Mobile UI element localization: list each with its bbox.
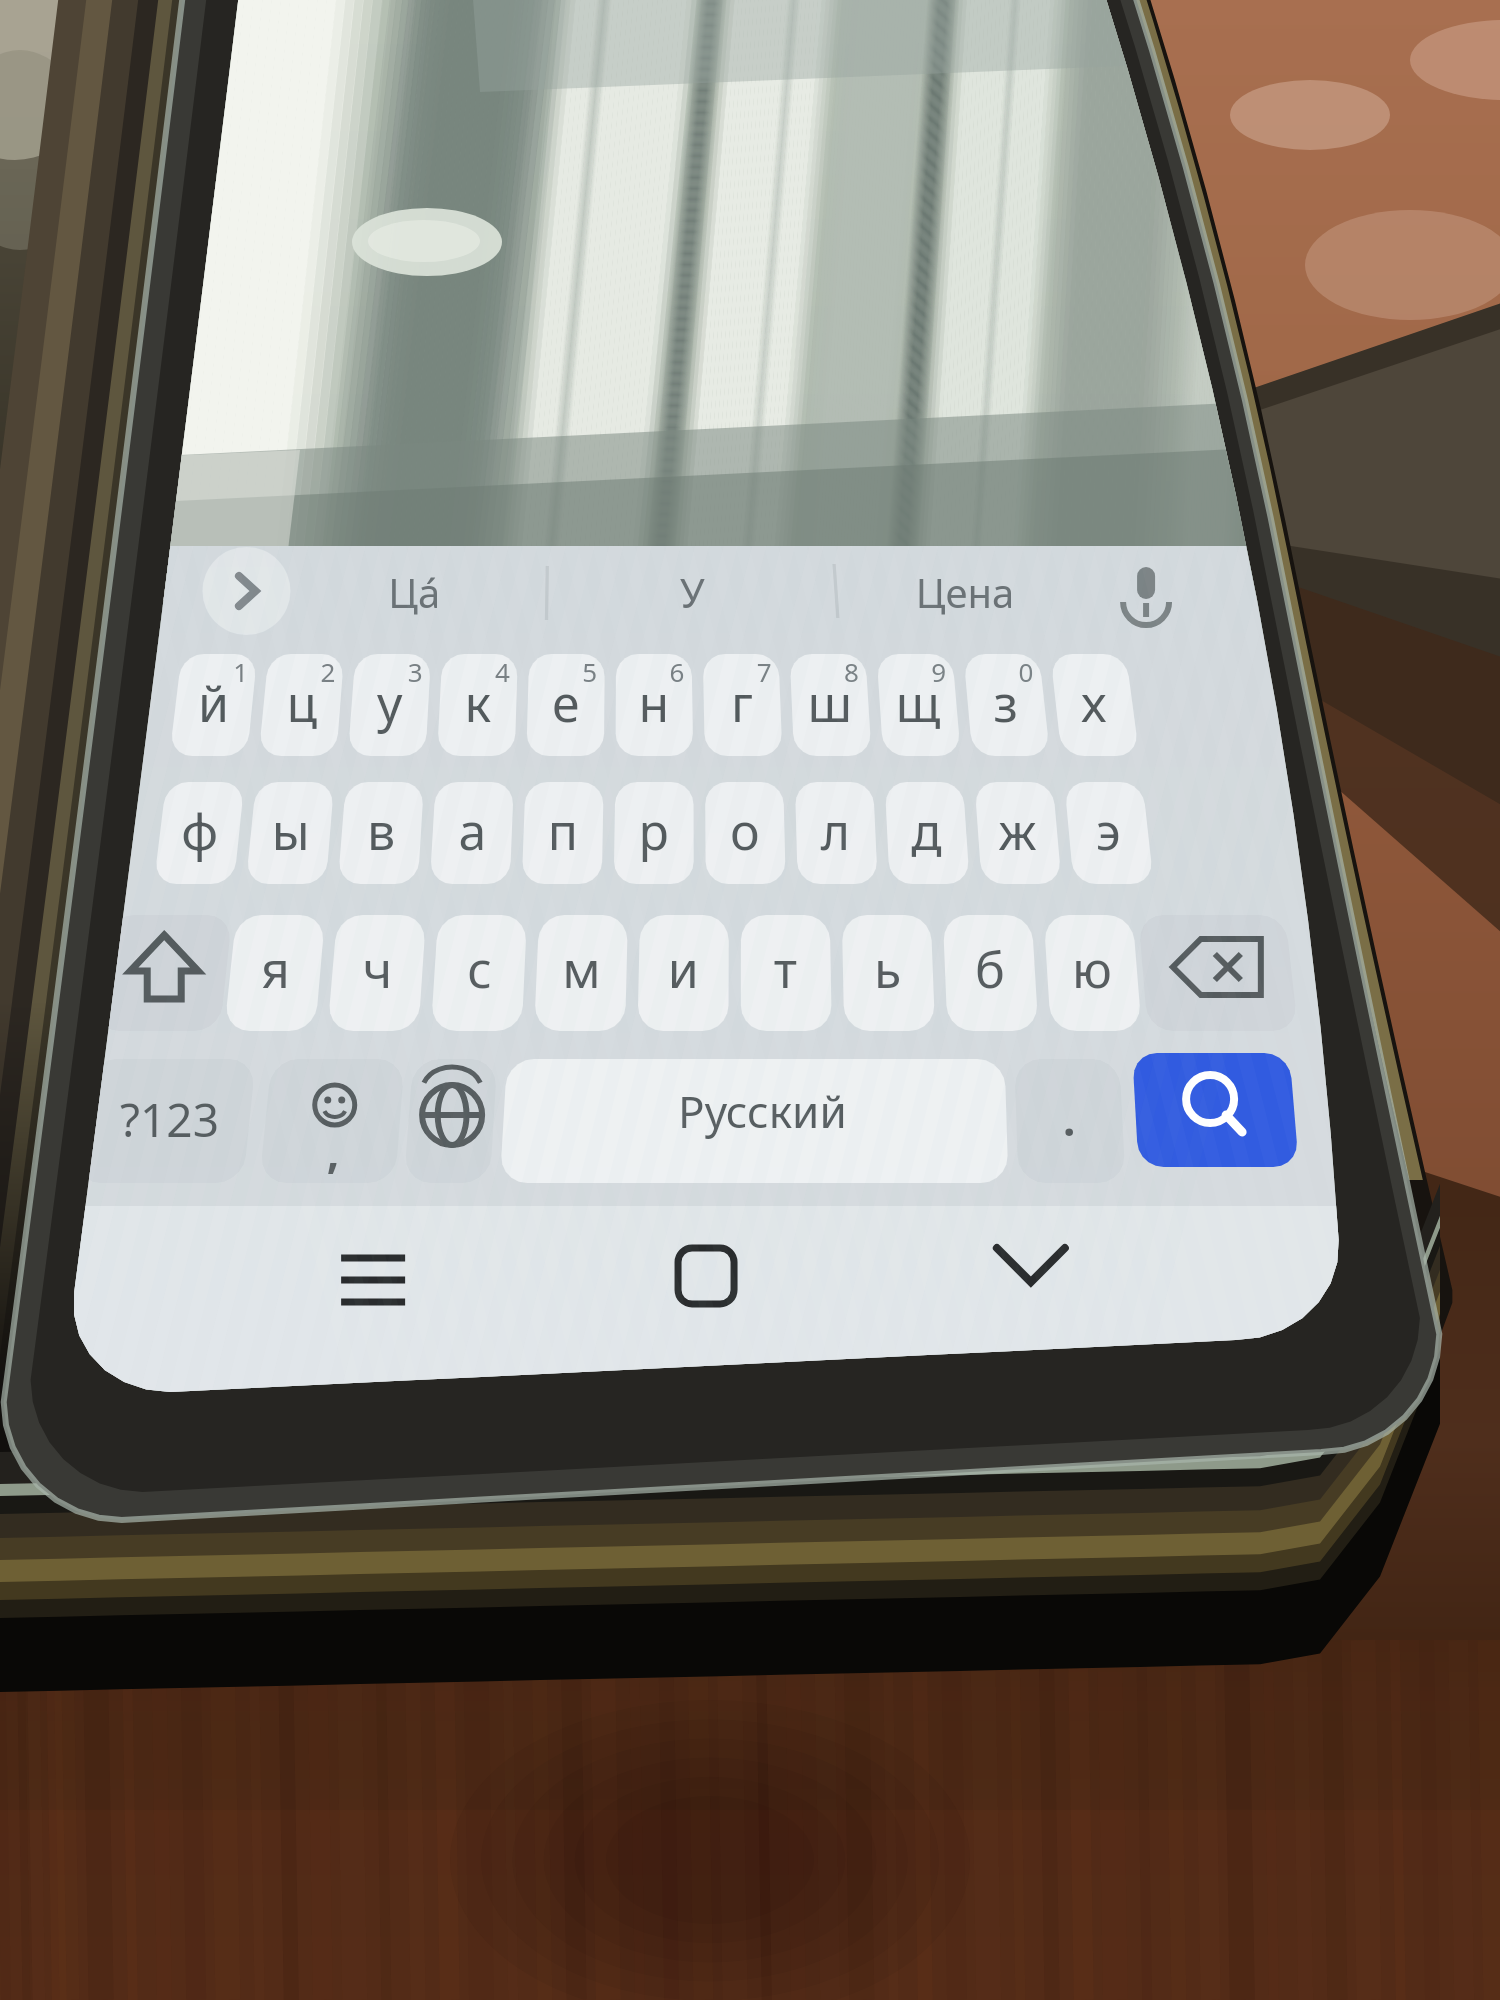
- button[interactable]: Shift: [101, 915, 226, 1031]
- button[interactable]: с: [428, 915, 530, 1031]
- button[interactable]: Recent apps: [272, 1220, 474, 1340]
- button[interactable]: б: [939, 915, 1041, 1031]
- button[interactable]: ж: [972, 782, 1063, 884]
- button[interactable]: ф: [154, 782, 245, 884]
- button[interactable]: к: [434, 654, 522, 756]
- button[interactable]: ч: [326, 915, 428, 1031]
- button[interactable]: Voice input: [1102, 548, 1211, 634]
- button[interactable]: е: [522, 654, 610, 756]
- button[interactable]: л: [790, 782, 881, 884]
- button[interactable]: н: [610, 654, 698, 756]
- button[interactable]: з: [962, 654, 1050, 756]
- button[interactable]: Home: [604, 1216, 806, 1336]
- button[interactable]: ы: [245, 782, 336, 884]
- button[interactable]: п: [517, 782, 608, 884]
- button[interactable]: Change language: [408, 1059, 493, 1183]
- button[interactable]: в: [335, 782, 426, 884]
- button[interactable]: ц: [257, 654, 345, 756]
- button[interactable]: Backspace: [1143, 915, 1292, 1031]
- button[interactable]: ш: [786, 654, 874, 756]
- button[interactable]: э: [1063, 782, 1154, 884]
- button[interactable]: ?123 symbols: [81, 1059, 249, 1183]
- button[interactable]: й: [169, 654, 257, 756]
- button[interactable]: г: [698, 654, 786, 756]
- button[interactable]: Hide keyboard: [929, 1202, 1131, 1322]
- button[interactable]: Period: [1016, 1059, 1122, 1183]
- button[interactable]: Emoji: [265, 1059, 399, 1183]
- button[interactable]: Search: [1136, 1053, 1295, 1177]
- button[interactable]: ю: [1041, 915, 1143, 1031]
- button[interactable]: Ца́: [306, 548, 535, 634]
- button[interactable]: я: [224, 915, 326, 1031]
- button[interactable]: м: [530, 915, 632, 1031]
- button[interactable]: У: [557, 548, 830, 634]
- button[interactable]: р: [608, 782, 699, 884]
- button[interactable]: у: [345, 654, 433, 756]
- button[interactable]: х: [1050, 654, 1138, 756]
- button[interactable]: т: [734, 915, 836, 1031]
- button[interactable]: More suggestions: [197, 548, 295, 634]
- button[interactable]: о: [699, 782, 790, 884]
- button[interactable]: и: [632, 915, 734, 1031]
- button[interactable]: щ: [874, 654, 962, 756]
- button[interactable]: Русский space: [503, 1059, 1006, 1183]
- button[interactable]: Цена: [840, 548, 1102, 634]
- button[interactable]: ь: [836, 915, 938, 1031]
- button[interactable]: д: [881, 782, 972, 884]
- button[interactable]: а: [426, 782, 517, 884]
